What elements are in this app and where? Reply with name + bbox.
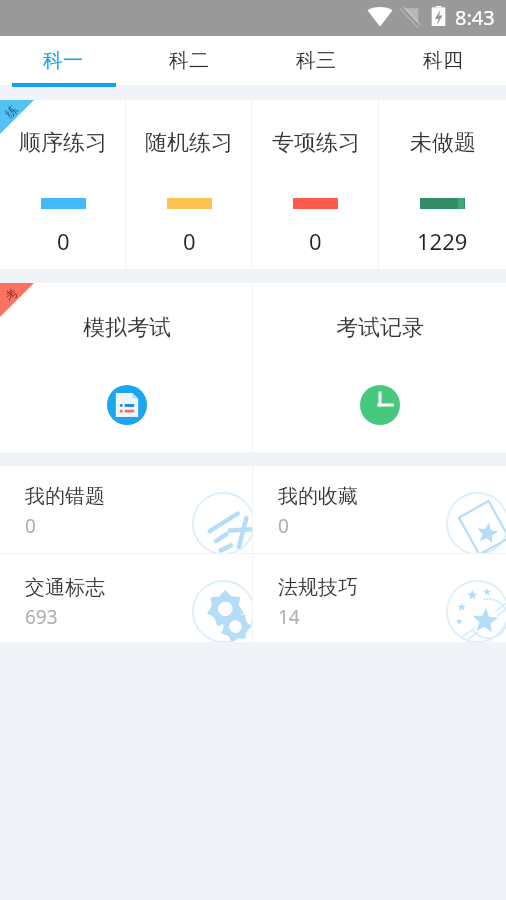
staticText: 顺序练习 xyxy=(19,129,107,157)
staticText: 交通标志 xyxy=(25,575,105,600)
button[interactable]: 我的错题 xyxy=(0,466,252,553)
button[interactable]: 科二 xyxy=(126,36,252,85)
staticText: 693 xyxy=(25,604,58,630)
button[interactable]: 我的收藏 xyxy=(253,466,506,553)
staticText: 法规技巧 xyxy=(278,575,358,600)
button[interactable]: 科三 xyxy=(252,36,379,85)
staticText: 模拟考试 xyxy=(83,314,171,342)
staticText: 我的错题 xyxy=(25,484,105,509)
button[interactable]: 专项练习 xyxy=(252,100,379,269)
staticText: 0 xyxy=(278,513,289,539)
staticText: 专项练习 xyxy=(272,129,360,157)
staticText: 随机练习 xyxy=(145,129,233,157)
staticText: 科二 xyxy=(169,48,209,73)
staticText: 8:43 xyxy=(455,4,495,31)
button[interactable]: 顺序练习 xyxy=(0,100,126,269)
staticText: 未做题 xyxy=(410,129,476,157)
staticText: 练 xyxy=(2,102,21,121)
staticText: 科四 xyxy=(423,48,463,73)
button[interactable]: 科四 xyxy=(379,36,506,85)
button[interactable]: 交通标志 xyxy=(0,554,252,642)
staticText: 考 xyxy=(2,285,21,304)
button[interactable]: 随机练习 xyxy=(126,100,252,269)
button[interactable]: 法规技巧 xyxy=(253,554,506,642)
staticText: 0 xyxy=(25,513,36,539)
staticText: 考试记录 xyxy=(336,314,424,342)
staticText: 14 xyxy=(278,604,300,630)
staticText: 0 xyxy=(57,226,70,256)
staticText: 科一 xyxy=(43,48,83,73)
staticText: 科三 xyxy=(296,48,336,73)
staticText: 0 xyxy=(309,226,322,256)
staticText: 1229 xyxy=(417,226,468,256)
button[interactable]: 考试记录 xyxy=(253,283,506,452)
button[interactable]: 科一 xyxy=(0,36,126,85)
staticText: 0 xyxy=(183,226,196,256)
button[interactable]: 未做题 xyxy=(379,100,506,269)
button[interactable]: 模拟考试 xyxy=(0,283,253,452)
staticText: 我的收藏 xyxy=(278,484,358,509)
